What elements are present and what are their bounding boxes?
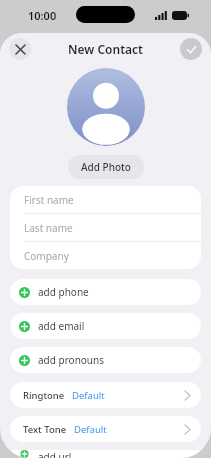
button[interactable]: add phone xyxy=(10,279,201,305)
button[interactable]: Close xyxy=(9,38,31,60)
button[interactable]: add pronouns xyxy=(10,347,201,373)
button[interactable]: add email xyxy=(10,313,201,339)
staticText: add email xyxy=(38,319,85,333)
button[interactable]: Text Tone xyxy=(10,416,201,442)
button[interactable]: add url xyxy=(10,450,201,458)
staticText: First name xyxy=(24,193,74,207)
button[interactable]: Done xyxy=(180,38,202,60)
staticText: add url xyxy=(38,450,72,458)
staticText: Default xyxy=(72,389,105,402)
button[interactable]: Last name xyxy=(10,214,201,241)
staticText: Last name xyxy=(24,221,73,235)
staticText: add pronouns xyxy=(38,353,105,367)
staticText: Default xyxy=(74,423,107,436)
staticText: Company xyxy=(24,249,69,263)
button[interactable]: Ringtone xyxy=(10,382,201,408)
staticText: add phone xyxy=(38,285,89,299)
staticText: 10:00 xyxy=(28,8,57,23)
staticText: New Contact xyxy=(68,41,143,57)
staticText: Text Tone xyxy=(23,423,67,436)
staticText: Add Photo xyxy=(81,160,131,174)
button[interactable]: Add Photo xyxy=(68,155,144,179)
staticText: Ringtone xyxy=(23,389,65,402)
button[interactable]: First name xyxy=(10,186,201,213)
button[interactable]: Company xyxy=(10,242,201,269)
